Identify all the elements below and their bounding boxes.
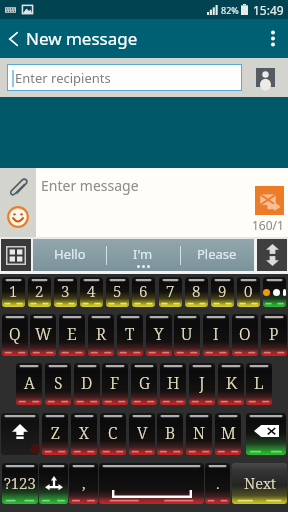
button[interactable]: B	[157, 413, 183, 455]
button[interactable]: More options	[258, 19, 288, 58]
button[interactable]: D	[74, 363, 100, 405]
button[interactable]: More	[263, 277, 286, 307]
button[interactable]: 3	[54, 277, 77, 307]
button[interactable]: R	[88, 314, 114, 356]
staticText: 5	[113, 281, 122, 301]
button[interactable]: Move cursor	[39, 463, 68, 504]
button[interactable]: 7	[159, 277, 182, 307]
staticText: Please	[197, 245, 237, 263]
staticText: I'm	[133, 245, 153, 263]
staticText: 0	[244, 281, 253, 301]
staticText: M	[221, 422, 236, 444]
button[interactable]: 5	[106, 277, 129, 307]
staticText: Enter recipients	[15, 69, 111, 87]
button[interactable]: Contacts	[256, 68, 275, 87]
button[interactable]: V	[129, 413, 155, 455]
button[interactable]: Next	[232, 463, 287, 504]
button[interactable]: Space	[99, 463, 204, 504]
staticText: O	[239, 323, 251, 345]
button[interactable]: I'm	[106, 239, 180, 271]
button[interactable]: O	[232, 314, 258, 356]
staticText: Z	[51, 422, 60, 444]
button[interactable]: Q	[2, 314, 28, 356]
staticText: V	[137, 422, 148, 444]
button[interactable]: H	[160, 363, 186, 405]
button[interactable]: ,	[69, 463, 98, 504]
staticText: C	[108, 422, 118, 444]
staticText: L	[254, 372, 264, 394]
staticText: 7	[166, 281, 175, 301]
button[interactable]: 6	[132, 277, 155, 307]
button[interactable]: G	[131, 363, 157, 405]
button[interactable]: Enter recipients	[7, 64, 242, 91]
staticText: G	[139, 372, 150, 394]
staticText: ,	[82, 473, 86, 493]
button[interactable]: Z	[42, 413, 68, 455]
button[interactable]: Y	[146, 314, 172, 356]
button[interactable]: Expand suggestions	[257, 239, 287, 271]
button[interactable]: Emoji	[5, 204, 31, 230]
staticText: S	[54, 372, 63, 394]
staticText: B	[165, 422, 176, 444]
staticText: New message	[26, 27, 138, 50]
button[interactable]: 4	[80, 277, 103, 307]
button[interactable]: P	[261, 314, 287, 356]
button[interactable]: Keyboard settings	[1, 239, 31, 271]
button[interactable]: C	[100, 413, 126, 455]
staticText: T	[125, 323, 135, 345]
staticText: 160/1	[252, 217, 284, 233]
button[interactable]: U	[174, 314, 200, 356]
staticText: W	[35, 323, 52, 345]
staticText: 1	[9, 281, 18, 301]
staticText: 8	[192, 281, 201, 301]
button[interactable]: Back	[0, 19, 26, 58]
button[interactable]: 0	[237, 277, 260, 307]
staticText: Next	[244, 473, 276, 493]
staticText: Enter message	[41, 176, 139, 195]
button[interactable]: Attach	[4, 173, 32, 201]
staticText: Q	[9, 323, 21, 345]
button[interactable]: 1	[2, 277, 25, 307]
button[interactable]: M	[215, 413, 241, 455]
button[interactable]: Send message	[255, 186, 284, 215]
button[interactable]: Please	[180, 239, 254, 271]
staticText: A	[24, 372, 35, 394]
button[interactable]: E	[59, 314, 85, 356]
staticText: 82%	[221, 4, 239, 16]
staticText: P	[269, 323, 279, 345]
button[interactable]: ?123	[2, 463, 38, 504]
button[interactable]: Hello	[33, 239, 106, 271]
button[interactable]: N	[186, 413, 212, 455]
button[interactable]: I	[203, 314, 229, 356]
staticText: R	[96, 323, 107, 345]
staticText: Hello	[54, 245, 86, 263]
button[interactable]: 2	[28, 277, 51, 307]
button[interactable]: Shift	[1, 413, 39, 455]
staticText: J	[199, 372, 205, 394]
staticText: 9	[218, 281, 227, 301]
staticText: 4	[87, 281, 96, 301]
button[interactable]: W	[30, 314, 56, 356]
staticText: X	[79, 422, 89, 444]
staticText: K	[226, 372, 237, 394]
button[interactable]: X	[71, 413, 97, 455]
button[interactable]: K	[218, 363, 244, 405]
button[interactable]: .	[205, 463, 230, 504]
staticText: N	[193, 422, 205, 444]
button[interactable]: J	[189, 363, 215, 405]
staticText: H	[167, 372, 180, 394]
button[interactable]: T	[117, 314, 143, 356]
button[interactable]: A	[16, 363, 42, 405]
button[interactable]: Delete	[246, 413, 286, 455]
staticText: .	[216, 473, 220, 493]
staticText: E	[67, 323, 77, 345]
button[interactable]: 9	[211, 277, 234, 307]
button[interactable]: 8	[185, 277, 208, 307]
staticText: Y	[154, 323, 164, 345]
staticText: 15:49	[253, 2, 284, 18]
button[interactable]: F	[102, 363, 128, 405]
button[interactable]: L	[246, 363, 272, 405]
button[interactable]: S	[45, 363, 71, 405]
staticText: D	[81, 372, 93, 394]
staticText: 2	[35, 281, 44, 301]
